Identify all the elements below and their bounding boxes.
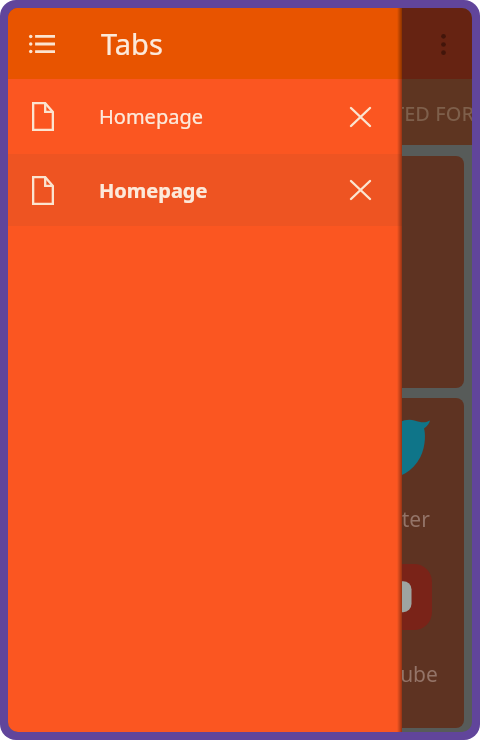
staticText: Homepage [99,177,208,204]
button[interactable]: Close tab [342,99,378,135]
button[interactable]: Twitter [345,400,455,540]
button[interactable]: Homepage [8,154,402,226]
staticText: Homepage [99,103,203,130]
staticText: YouTube [353,660,438,689]
button[interactable]: YouTube [345,555,455,695]
staticText: SUGGESTED FOR YOU [316,100,472,127]
button[interactable]: Tabs [8,8,402,79]
button[interactable] [16,156,464,388]
staticText: Twitter [361,505,430,534]
button[interactable]: More options [423,24,463,64]
button[interactable]: Close tab [342,172,378,208]
staticText: Tabs [101,24,163,63]
button[interactable]: Homepage [8,79,402,154]
